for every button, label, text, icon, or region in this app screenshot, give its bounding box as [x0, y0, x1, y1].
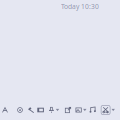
button[interactable]: Insert photo: [74, 104, 88, 116]
button[interactable]: Insert audio: [86, 104, 100, 116]
staticText: Today 10:30: [61, 2, 99, 11]
button[interactable]: Insert link: [61, 104, 75, 116]
button[interactable]: Checklist: [13, 104, 27, 116]
button[interactable]: Markup: [24, 104, 38, 116]
button[interactable]: Markup tools: [101, 104, 115, 116]
button[interactable]: Table: [34, 104, 48, 116]
button[interactable]: Record audio: [47, 104, 61, 116]
button[interactable]: Text format: [0, 104, 12, 116]
